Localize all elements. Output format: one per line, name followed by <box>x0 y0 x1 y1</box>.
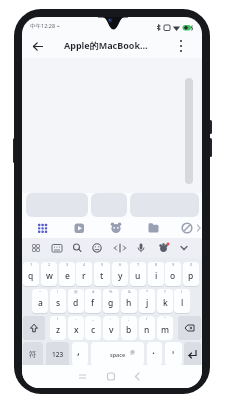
button[interactable] <box>28 36 48 56</box>
staticText: r <box>82 270 86 282</box>
staticText: g <box>108 297 114 309</box>
staticText: & <box>128 289 131 294</box>
staticText: 1 <box>30 262 33 267</box>
staticText: % <box>109 289 113 294</box>
staticText: 4 <box>83 262 86 267</box>
staticText: ? <box>164 289 166 294</box>
button[interactable]: 8 <box>148 262 164 286</box>
button[interactable] <box>184 342 201 366</box>
staticText: z <box>56 324 61 336</box>
button[interactable]: " <box>157 316 173 340</box>
button[interactable]: ~ <box>32 289 48 313</box>
staticText: : <box>110 316 112 321</box>
staticText: p <box>188 270 194 282</box>
button[interactable]: Apple的MacBook… <box>64 39 148 51</box>
button[interactable]: & <box>121 289 137 313</box>
button[interactable]: _ <box>85 316 101 340</box>
staticText: k <box>163 297 168 309</box>
staticText: x <box>74 324 79 336</box>
staticText: s <box>56 297 61 309</box>
button[interactable] <box>130 193 199 217</box>
button[interactable] <box>23 316 45 340</box>
staticText: ~ <box>39 289 42 294</box>
button[interactable] <box>178 316 201 340</box>
button[interactable]: 0 <box>183 262 199 286</box>
staticText: 拼 <box>130 349 135 355</box>
button[interactable]: 5 <box>94 262 110 286</box>
staticText: ! <box>57 289 59 294</box>
staticText: f <box>91 297 95 309</box>
staticText: " <box>164 316 166 321</box>
staticText: 123 <box>52 350 64 359</box>
staticText: u <box>135 270 141 282</box>
staticText: m <box>161 324 170 336</box>
staticText: space <box>110 351 126 358</box>
staticText: 5 <box>101 262 104 267</box>
staticText: 7 <box>137 262 140 267</box>
button[interactable]: ! <box>50 289 66 313</box>
button[interactable]: ( <box>174 289 190 313</box>
button[interactable]: 6 <box>112 262 128 286</box>
button[interactable]: : <box>103 316 119 340</box>
staticText: . <box>152 342 155 357</box>
button[interactable]: 2 <box>41 262 57 286</box>
staticText: v <box>109 324 114 336</box>
button[interactable]: 1 <box>23 262 39 286</box>
staticText: 8 <box>155 262 158 267</box>
staticText: l <box>181 297 184 309</box>
staticText: 6 <box>119 262 122 267</box>
button[interactable] <box>175 39 187 53</box>
staticText: e <box>65 270 70 282</box>
button[interactable] <box>147 342 162 366</box>
staticText: 9 <box>172 262 175 267</box>
staticText: y <box>118 270 123 282</box>
button[interactable] <box>22 238 202 258</box>
button[interactable]: 4 <box>76 262 92 286</box>
staticText: # <box>92 289 95 294</box>
staticText: a <box>38 297 43 309</box>
staticText: w <box>46 270 53 282</box>
staticText: ) <box>57 316 59 321</box>
button[interactable]: ª <box>165 342 182 366</box>
button[interactable]: 3 <box>59 262 75 286</box>
button[interactable]: ? <box>157 289 173 313</box>
button[interactable]: space <box>91 342 144 366</box>
staticText: , <box>77 343 81 358</box>
button[interactable] <box>22 365 202 388</box>
staticText: 0 <box>190 262 193 267</box>
staticText: q <box>28 270 34 282</box>
button[interactable]: ) <box>50 316 66 340</box>
staticText: * <box>146 289 149 294</box>
staticText: _ <box>92 316 94 321</box>
staticText: ; <box>128 316 130 321</box>
button[interactable]: 123 <box>46 342 69 366</box>
button[interactable]: - <box>68 316 84 340</box>
staticText: n <box>144 324 150 336</box>
staticText: 符 <box>29 350 37 359</box>
button[interactable] <box>91 193 127 217</box>
staticText: c <box>91 324 96 336</box>
button[interactable]: # <box>85 289 101 313</box>
staticText: 3 <box>66 262 69 267</box>
button[interactable]: ; <box>121 316 137 340</box>
staticText: j <box>146 297 149 309</box>
staticText: ª <box>172 350 175 358</box>
staticText: o <box>170 270 176 282</box>
button[interactable]: @ <box>68 289 84 313</box>
staticText: b <box>126 324 132 336</box>
button[interactable]: * <box>139 289 155 313</box>
button[interactable] <box>26 193 88 217</box>
staticText: i <box>155 270 158 282</box>
button[interactable] <box>72 342 88 366</box>
button[interactable]: / <box>139 316 155 340</box>
button[interactable]: 符 <box>23 342 43 366</box>
staticText: @ <box>74 289 78 294</box>
staticText: - <box>75 316 77 321</box>
button[interactable]: 7 <box>130 262 146 286</box>
button[interactable]: % <box>103 289 119 313</box>
button[interactable] <box>22 218 202 238</box>
staticText: h <box>126 297 132 309</box>
button[interactable]: 9 <box>165 262 181 286</box>
staticText: 2 <box>48 262 51 267</box>
staticText: 中午12:28 ⌁ <box>30 22 60 30</box>
